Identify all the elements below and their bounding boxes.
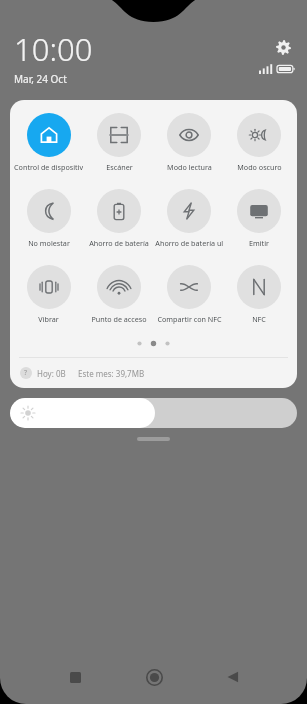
staticText: Vibrar xyxy=(38,314,59,324)
staticText: ? xyxy=(24,368,28,378)
staticText: Emitir xyxy=(249,238,269,248)
staticText: Ahorro de batería ultra xyxy=(155,238,223,248)
button[interactable]: Ahorro de batería ultra xyxy=(154,189,224,248)
button[interactable]: Brightness xyxy=(10,398,297,428)
staticText: Control de dispositivos xyxy=(14,162,83,172)
staticText: Punto de acceso xyxy=(91,314,147,324)
button[interactable]: No molestar xyxy=(13,189,84,248)
button[interactable]: Back xyxy=(214,658,252,696)
staticText: Modo lectura xyxy=(167,162,212,172)
button[interactable]: Vibrar xyxy=(13,265,84,324)
staticText: NFC xyxy=(252,314,266,324)
staticText: No molestar xyxy=(28,238,70,248)
button[interactable]: Settings xyxy=(271,35,295,59)
button[interactable]: Modo oscuro xyxy=(224,113,294,172)
button[interactable]: Recents xyxy=(56,658,94,696)
button[interactable]: Punto de acceso xyxy=(84,265,154,324)
button[interactable]: Emitir xyxy=(224,189,294,248)
button[interactable]: Ahorro de batería xyxy=(84,189,154,248)
staticText: Escáner xyxy=(106,162,133,172)
staticText: Este mes: 39,7MB xyxy=(78,368,145,379)
button[interactable]: Home xyxy=(135,658,173,696)
button[interactable]: Control de dispositivos xyxy=(13,113,84,172)
button[interactable]: Escáner xyxy=(84,113,154,172)
staticText: 10:00 xyxy=(14,28,93,70)
button[interactable]: NFC xyxy=(224,265,294,324)
button[interactable]: Compartir con NFC xyxy=(154,265,224,324)
staticText: Compartir con NFC xyxy=(157,314,222,324)
staticText: Hoy: 0B xyxy=(37,368,66,379)
button[interactable]: Modo lectura xyxy=(154,113,224,172)
staticText: Mar, 24 Oct xyxy=(14,72,67,86)
staticText: Modo oscuro xyxy=(237,162,282,172)
button[interactable]: ? xyxy=(10,358,297,388)
staticText: Ahorro de batería xyxy=(89,238,149,248)
